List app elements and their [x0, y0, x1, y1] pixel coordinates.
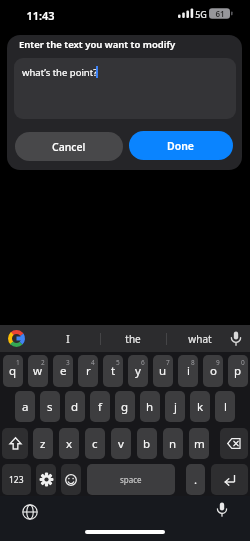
staticText: h	[146, 399, 154, 415]
staticText: n	[169, 436, 177, 452]
staticText: b	[143, 436, 151, 452]
staticText: 5	[116, 358, 120, 367]
staticText: space	[120, 474, 142, 485]
staticText: Enter the text you want to modify	[19, 38, 176, 51]
staticText: a	[22, 399, 29, 415]
staticText: d	[71, 399, 79, 415]
staticText: u	[159, 363, 167, 379]
staticText: m	[194, 436, 205, 452]
staticText: 0	[241, 358, 245, 367]
staticText: 11:43	[26, 8, 55, 23]
staticText: 2	[41, 358, 45, 367]
staticText: f	[98, 399, 102, 415]
staticText: t	[111, 363, 116, 379]
staticText: 61	[215, 8, 225, 19]
staticText: r	[86, 363, 91, 379]
staticText: q	[9, 363, 17, 379]
staticText: 8	[191, 358, 195, 367]
staticText: 1	[16, 358, 20, 367]
staticText: g	[121, 399, 129, 415]
staticText: Cancel	[52, 140, 86, 154]
staticText: what	[188, 332, 212, 346]
staticText: e	[60, 363, 67, 379]
staticText: k	[197, 399, 204, 415]
staticText: 6	[141, 358, 145, 367]
staticText: I	[66, 332, 70, 346]
staticText: l	[224, 399, 227, 415]
staticText: Done	[167, 139, 195, 153]
staticText: 7	[166, 358, 170, 367]
staticText: what’s the point?	[22, 66, 98, 79]
staticText: 9	[216, 358, 220, 367]
staticText: i	[187, 363, 190, 379]
staticText: 3	[66, 358, 70, 367]
staticText: c	[92, 436, 98, 452]
staticText: 123	[9, 474, 24, 486]
staticText: j	[174, 399, 177, 415]
staticText: y	[135, 363, 141, 379]
staticText: v	[118, 436, 124, 452]
staticText: x	[66, 436, 73, 452]
staticText: 5G	[195, 8, 207, 20]
staticText: z	[40, 436, 46, 452]
staticText: w	[33, 363, 43, 379]
staticText: .	[194, 472, 198, 488]
staticText: o	[210, 363, 217, 379]
staticText: 4	[91, 358, 95, 367]
staticText: s	[47, 399, 53, 415]
staticText: the	[125, 332, 141, 346]
staticText: p	[234, 363, 242, 379]
